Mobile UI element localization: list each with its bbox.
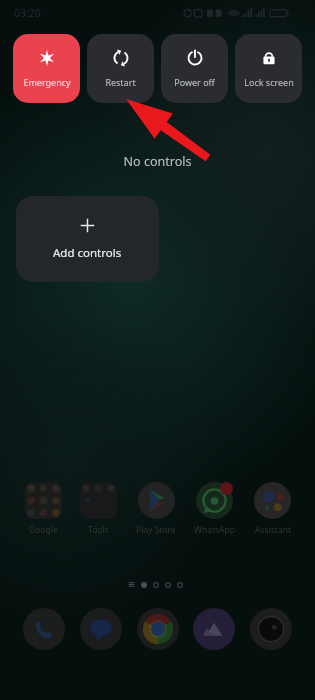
staticText: Google <box>29 524 58 536</box>
staticText: 03:20 <box>14 6 41 20</box>
staticText: Lock screen <box>244 76 294 88</box>
button[interactable]: Add controls <box>16 196 159 282</box>
staticText: Play Store <box>136 524 176 536</box>
button[interactable]: Power off <box>161 34 228 103</box>
staticText: Tools <box>88 524 109 536</box>
staticText: Power off <box>174 76 215 88</box>
button[interactable]: Lock screen <box>235 34 302 103</box>
staticText: Add controls <box>53 245 122 261</box>
staticText: Restart <box>105 76 136 88</box>
staticText: No controls <box>0 153 315 170</box>
staticText: WhatsApp <box>194 524 235 536</box>
button[interactable]: Restart <box>87 34 154 103</box>
staticText: Emergency <box>23 76 71 88</box>
button[interactable]: Emergency <box>13 34 80 103</box>
staticText: Assistant <box>255 524 291 536</box>
